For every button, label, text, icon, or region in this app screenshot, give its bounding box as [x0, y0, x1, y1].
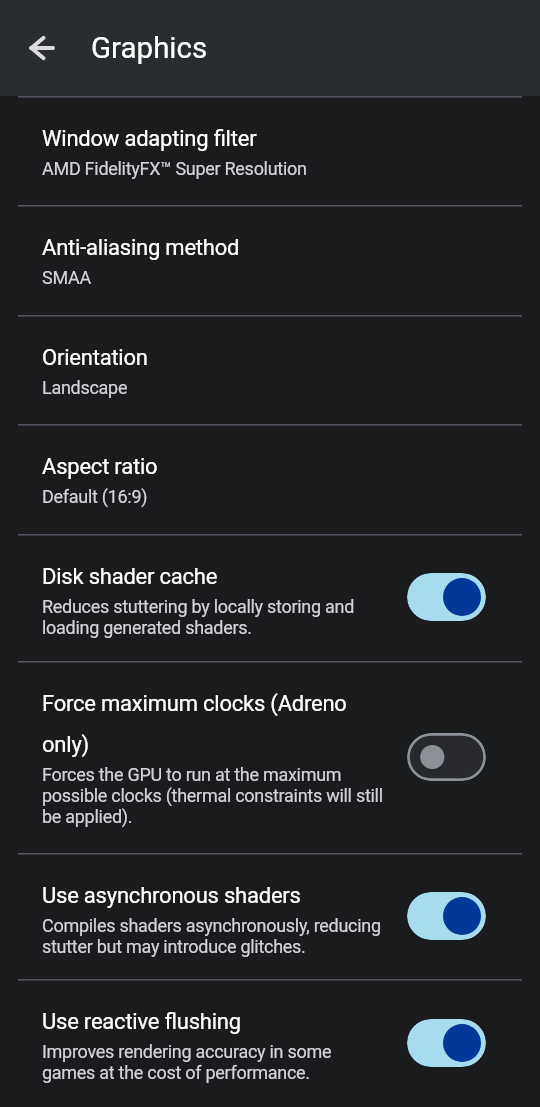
- button[interactable]: Enabled: [407, 1019, 486, 1067]
- staticText: Improves rendering accuracy in some game…: [42, 1041, 384, 1083]
- button[interactable]: Anti-aliasing method: [0, 207, 540, 315]
- staticText: Reduces stuttering by locally storing an…: [42, 596, 384, 638]
- button[interactable]: Disk shader cache: [0, 536, 540, 661]
- staticText: SMAA: [42, 267, 91, 288]
- staticText: Orientation: [42, 345, 148, 371]
- button[interactable]: Aspect ratio: [0, 426, 540, 534]
- staticText: Use reactive flushing: [42, 1009, 241, 1035]
- staticText: Disk shader cache: [42, 564, 218, 590]
- button[interactable]: Window adapting filter: [0, 98, 540, 205]
- button[interactable]: Enabled: [407, 573, 486, 621]
- button[interactable]: Disabled: [407, 733, 486, 781]
- staticText: Window adapting filter: [42, 126, 257, 152]
- staticText: Default (16:9): [42, 486, 148, 507]
- staticText: Compiles shaders asynchronously, reducin…: [42, 915, 384, 957]
- button[interactable]: Use reactive flushing: [0, 981, 540, 1107]
- button[interactable]: Orientation: [0, 317, 540, 424]
- button[interactable]: Enabled: [407, 892, 486, 940]
- staticText: AMD FidelityFX™ Super Resolution: [42, 158, 307, 179]
- staticText: Landscape: [42, 377, 128, 398]
- button[interactable]: Use asynchronous shaders: [0, 855, 540, 979]
- staticText: Force maximum clocks (Adreno only): [42, 691, 384, 758]
- staticText: Anti-aliasing method: [42, 235, 240, 261]
- button[interactable]: Force maximum clocks (Adreno only): [0, 663, 540, 853]
- staticText: Aspect ratio: [42, 454, 158, 480]
- button[interactable]: Navigate up: [18, 24, 66, 72]
- staticText: Use asynchronous shaders: [42, 883, 301, 909]
- staticText: Graphics: [91, 31, 208, 66]
- staticText: Forces the GPU to run at the maximum pos…: [42, 764, 384, 827]
